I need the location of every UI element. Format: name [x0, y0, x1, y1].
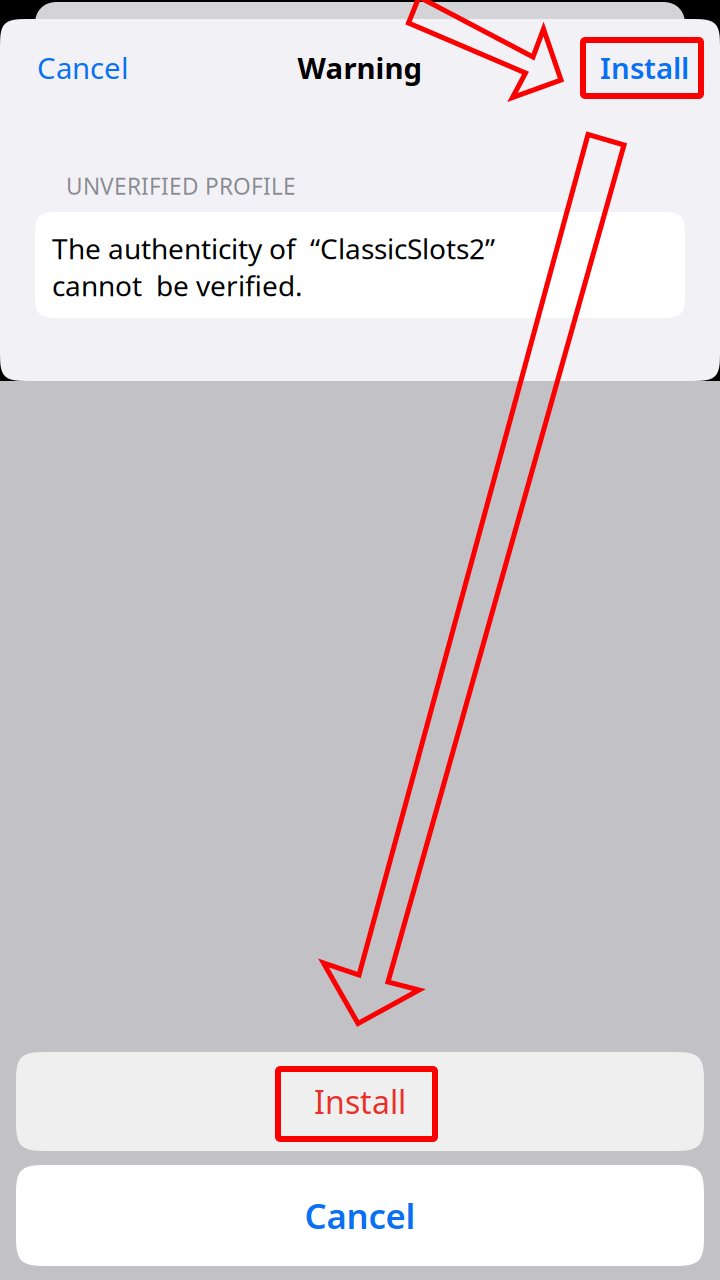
staticText: Warning	[297, 48, 422, 87]
staticText: Install	[314, 1080, 406, 1123]
button[interactable]: Install	[16, 1052, 704, 1151]
staticText: Install	[600, 48, 689, 87]
button[interactable]: Install	[580, 19, 720, 116]
button[interactable]: Cancel	[0, 19, 149, 116]
staticText: The authenticity of “ClassicSlots2”	[52, 230, 495, 267]
staticText: Cancel	[37, 48, 129, 87]
staticText: cannot be verified.	[52, 267, 303, 304]
button[interactable]: Cancel	[16, 1165, 704, 1266]
staticText: Cancel	[304, 1192, 415, 1238]
staticText: UNVERIFIED PROFILE	[66, 171, 296, 201]
